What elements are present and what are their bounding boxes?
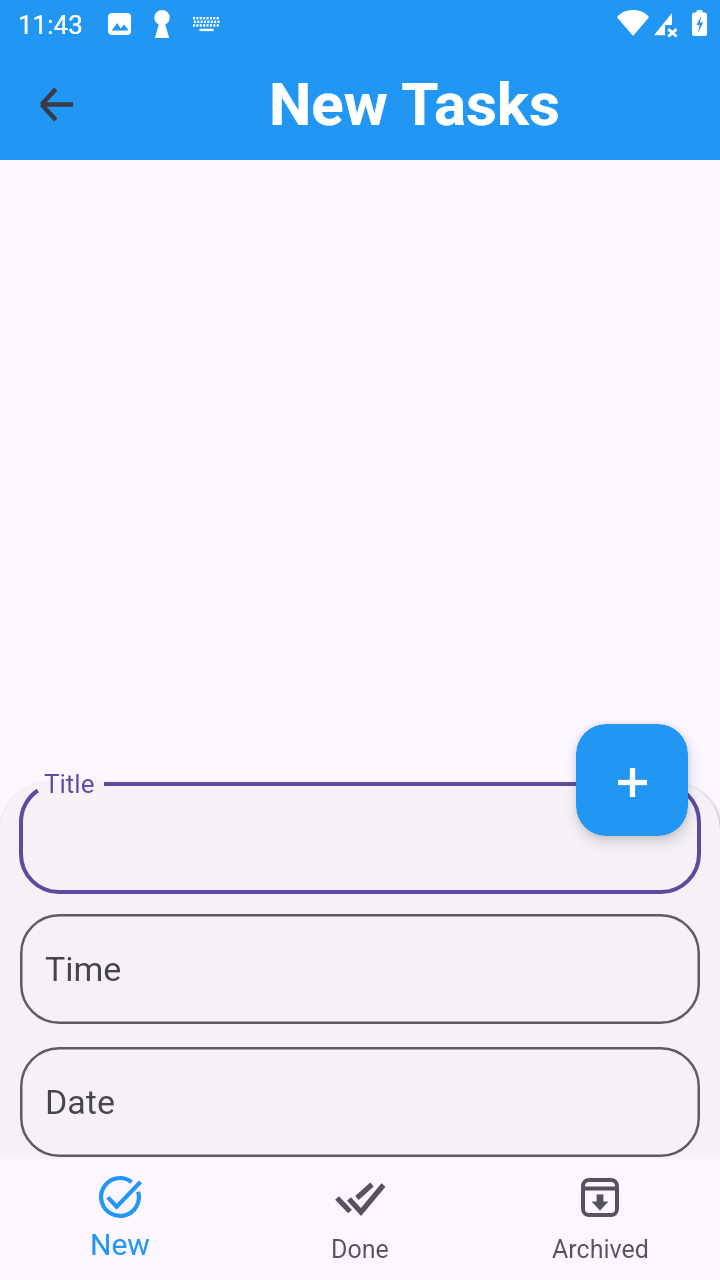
staticText: Date — [45, 1082, 115, 1122]
button[interactable]: Back — [20, 68, 92, 140]
button[interactable]: Time — [20, 914, 700, 1024]
staticText: New Tasks — [269, 69, 560, 139]
button[interactable]: Archived — [480, 1159, 720, 1280]
button[interactable]: New — [0, 1159, 240, 1280]
button[interactable]: Add task — [576, 724, 688, 836]
button[interactable]: Title — [19, 782, 701, 894]
staticText: New — [90, 1227, 150, 1262]
button[interactable]: Date — [20, 1047, 700, 1157]
staticText: Title — [44, 769, 95, 799]
staticText: Archived — [552, 1235, 649, 1264]
staticText: Time — [45, 949, 122, 989]
button[interactable]: Done — [240, 1159, 480, 1280]
staticText: 11:43 — [18, 10, 83, 40]
staticText: Done — [331, 1235, 389, 1264]
